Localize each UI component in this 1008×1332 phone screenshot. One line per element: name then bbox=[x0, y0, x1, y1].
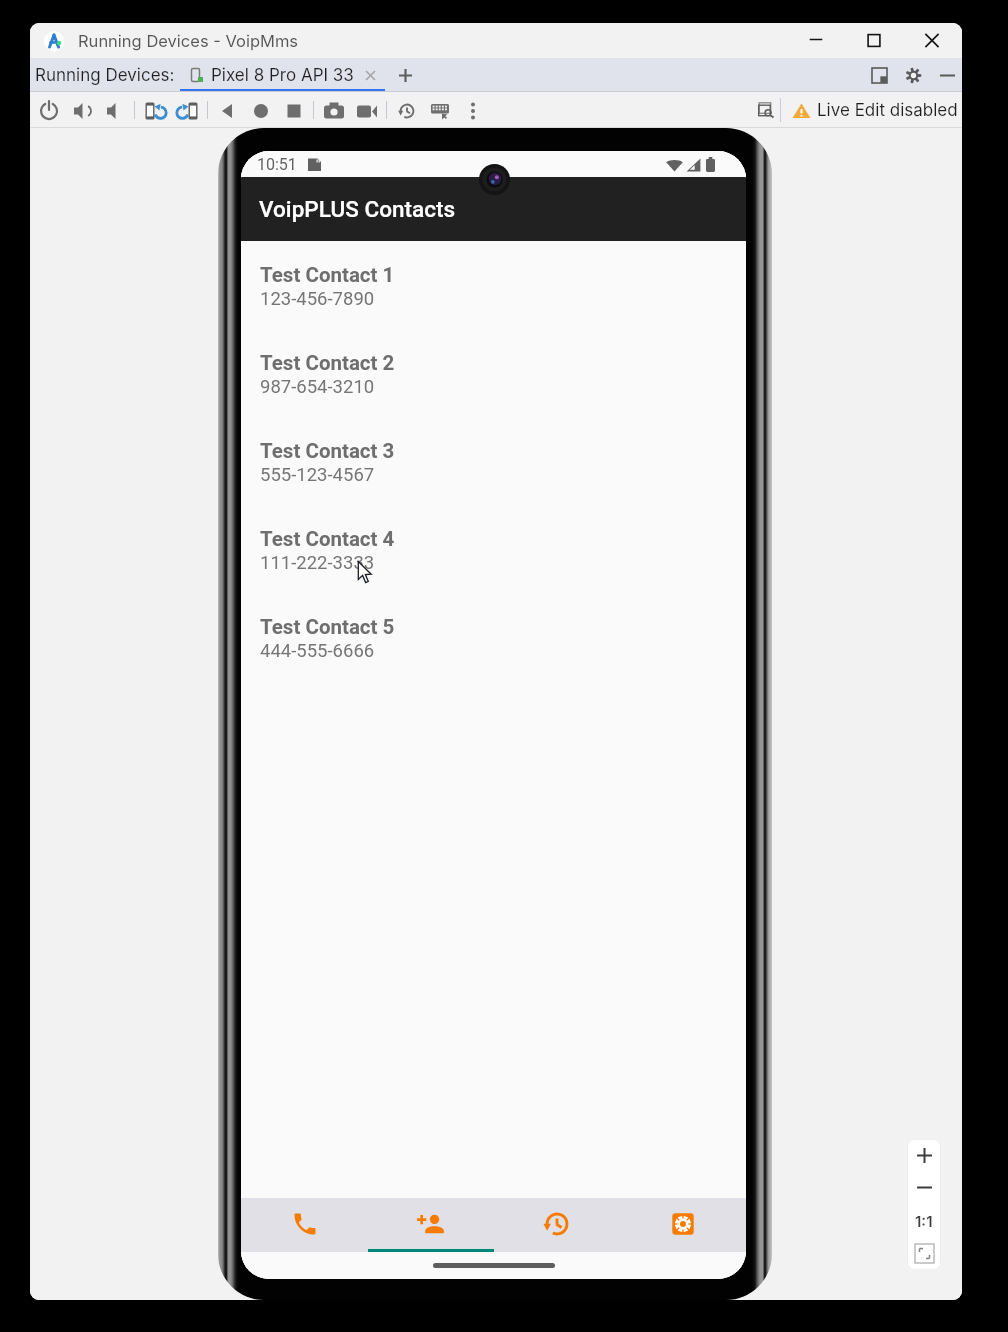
staticText: 111-222-3333 bbox=[260, 552, 375, 574]
staticText: Test Contact 4 bbox=[260, 527, 395, 551]
button[interactable]: Screenshot bbox=[317, 94, 350, 127]
button[interactable]: 1:1 bbox=[907, 1204, 941, 1237]
button[interactable]: Settings bbox=[898, 60, 928, 90]
staticText: VoipPLUS Contacts bbox=[259, 196, 456, 222]
button[interactable]: Power bbox=[32, 94, 65, 127]
staticText: 10:51 bbox=[257, 155, 297, 174]
staticText: Test Contact 3 bbox=[260, 439, 395, 463]
staticText: Running Devices: bbox=[35, 65, 175, 86]
button[interactable]: Rotate right bbox=[171, 94, 204, 127]
button[interactable]: Test Contact 3 bbox=[241, 439, 746, 527]
button[interactable]: Live Edit disabled bbox=[792, 100, 958, 121]
button[interactable]: History bbox=[390, 94, 423, 127]
button[interactable]: Close bbox=[903, 23, 961, 58]
button[interactable]: Maximize bbox=[845, 23, 903, 58]
button[interactable]: Add contact bbox=[368, 1198, 494, 1252]
button[interactable]: Test Contact 4 bbox=[241, 527, 746, 615]
button[interactable]: Record screen bbox=[350, 94, 383, 127]
button[interactable]: Settings bbox=[620, 1198, 746, 1252]
button[interactable]: Minimize bbox=[787, 23, 845, 58]
button[interactable]: Home bbox=[244, 94, 277, 127]
staticText: 1:1 bbox=[915, 1212, 933, 1230]
button[interactable]: More bbox=[456, 94, 489, 127]
button[interactable]: Test Contact 1 bbox=[241, 263, 746, 351]
staticText: 444-555-6666 bbox=[260, 640, 375, 662]
button[interactable]: Call history bbox=[494, 1198, 620, 1252]
staticText: Test Contact 5 bbox=[260, 615, 395, 639]
button[interactable]: Keyboard bbox=[423, 94, 456, 127]
staticText: 555-123-4567 bbox=[260, 464, 375, 486]
button[interactable]: Test Contact 2 bbox=[241, 351, 746, 439]
button[interactable]: Inspect bbox=[752, 96, 780, 124]
button[interactable]: Zoom out bbox=[907, 1171, 941, 1204]
staticText: Test Contact 1 bbox=[260, 263, 395, 287]
staticText: 987-654-3210 bbox=[260, 376, 375, 398]
button[interactable]: Volume down bbox=[98, 94, 131, 127]
button[interactable]: Back bbox=[211, 94, 244, 127]
button[interactable]: Layout bbox=[864, 60, 894, 90]
button[interactable]: Hide bbox=[932, 60, 962, 90]
staticText: Live Edit disabled bbox=[817, 100, 958, 121]
button[interactable]: Add device bbox=[392, 62, 418, 88]
staticText: 123-456-7890 bbox=[260, 288, 375, 310]
button[interactable]: Volume up bbox=[65, 94, 98, 127]
staticText: Test Contact 2 bbox=[260, 351, 395, 375]
button[interactable]: Zoom in bbox=[907, 1139, 941, 1171]
button[interactable]: Test Contact 5 bbox=[241, 615, 746, 703]
button[interactable]: Dial bbox=[241, 1198, 368, 1252]
staticText: Pixel 8 Pro API 33 bbox=[211, 65, 354, 86]
button[interactable]: Fit to screen bbox=[907, 1237, 941, 1270]
button[interactable]: Pixel 8 Pro API 33 bbox=[180, 58, 385, 92]
button[interactable]: Rotate left bbox=[138, 94, 171, 127]
staticText: Running Devices - VoipMms bbox=[78, 31, 299, 51]
button[interactable]: Overview bbox=[277, 94, 310, 127]
